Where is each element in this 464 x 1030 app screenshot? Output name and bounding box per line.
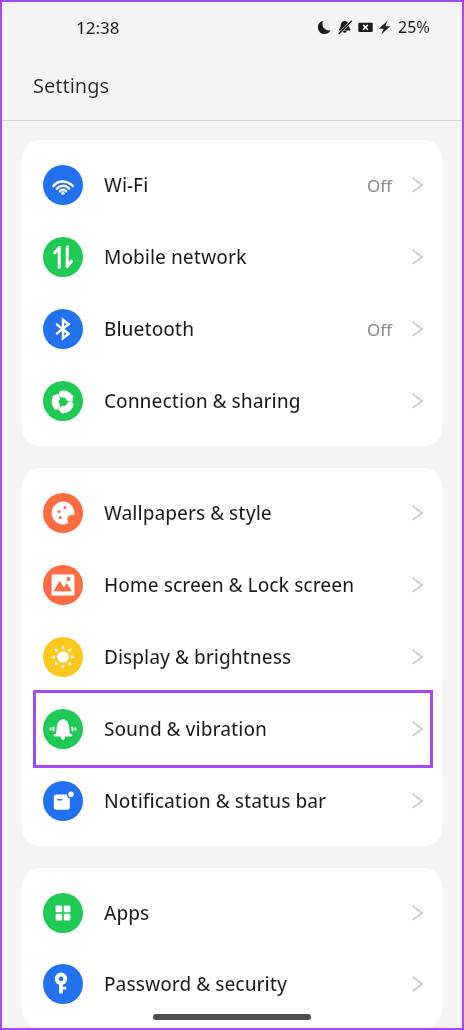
button[interactable]: Mobile network bbox=[22, 221, 442, 293]
staticText: Connection & sharing bbox=[104, 388, 301, 414]
button[interactable]: Sound & vibration bbox=[22, 693, 442, 765]
staticText: Off bbox=[367, 174, 392, 197]
staticText: Settings bbox=[33, 72, 110, 99]
staticText: Bluetooth bbox=[104, 316, 195, 342]
button[interactable]: Notification & status bar bbox=[22, 765, 442, 837]
staticText: Wallpapers & style bbox=[104, 500, 272, 526]
staticText: Wi-Fi bbox=[104, 172, 149, 198]
button[interactable]: Bluetooth bbox=[22, 293, 442, 365]
button[interactable]: Wi-Fi bbox=[22, 149, 442, 221]
button[interactable]: Wallpapers & style bbox=[22, 477, 442, 549]
staticText: 25% bbox=[398, 16, 430, 38]
button[interactable]: Connection & sharing bbox=[22, 365, 442, 437]
staticText: Home screen & Lock screen bbox=[104, 572, 355, 598]
staticText: Apps bbox=[104, 900, 150, 926]
button[interactable]: Apps bbox=[22, 877, 442, 949]
button[interactable]: Home screen & Lock screen bbox=[22, 549, 442, 621]
staticText: 12:38 bbox=[76, 16, 120, 39]
staticText: Notification & status bar bbox=[104, 788, 327, 814]
staticText: Sound & vibration bbox=[104, 716, 267, 742]
staticText: Off bbox=[367, 318, 392, 341]
staticText: Password & security bbox=[104, 971, 288, 997]
staticText: Display & brightness bbox=[104, 644, 292, 670]
staticText: Mobile network bbox=[104, 244, 247, 270]
button[interactable]: Display & brightness bbox=[22, 621, 442, 693]
button[interactable]: Password & security bbox=[22, 949, 442, 1019]
